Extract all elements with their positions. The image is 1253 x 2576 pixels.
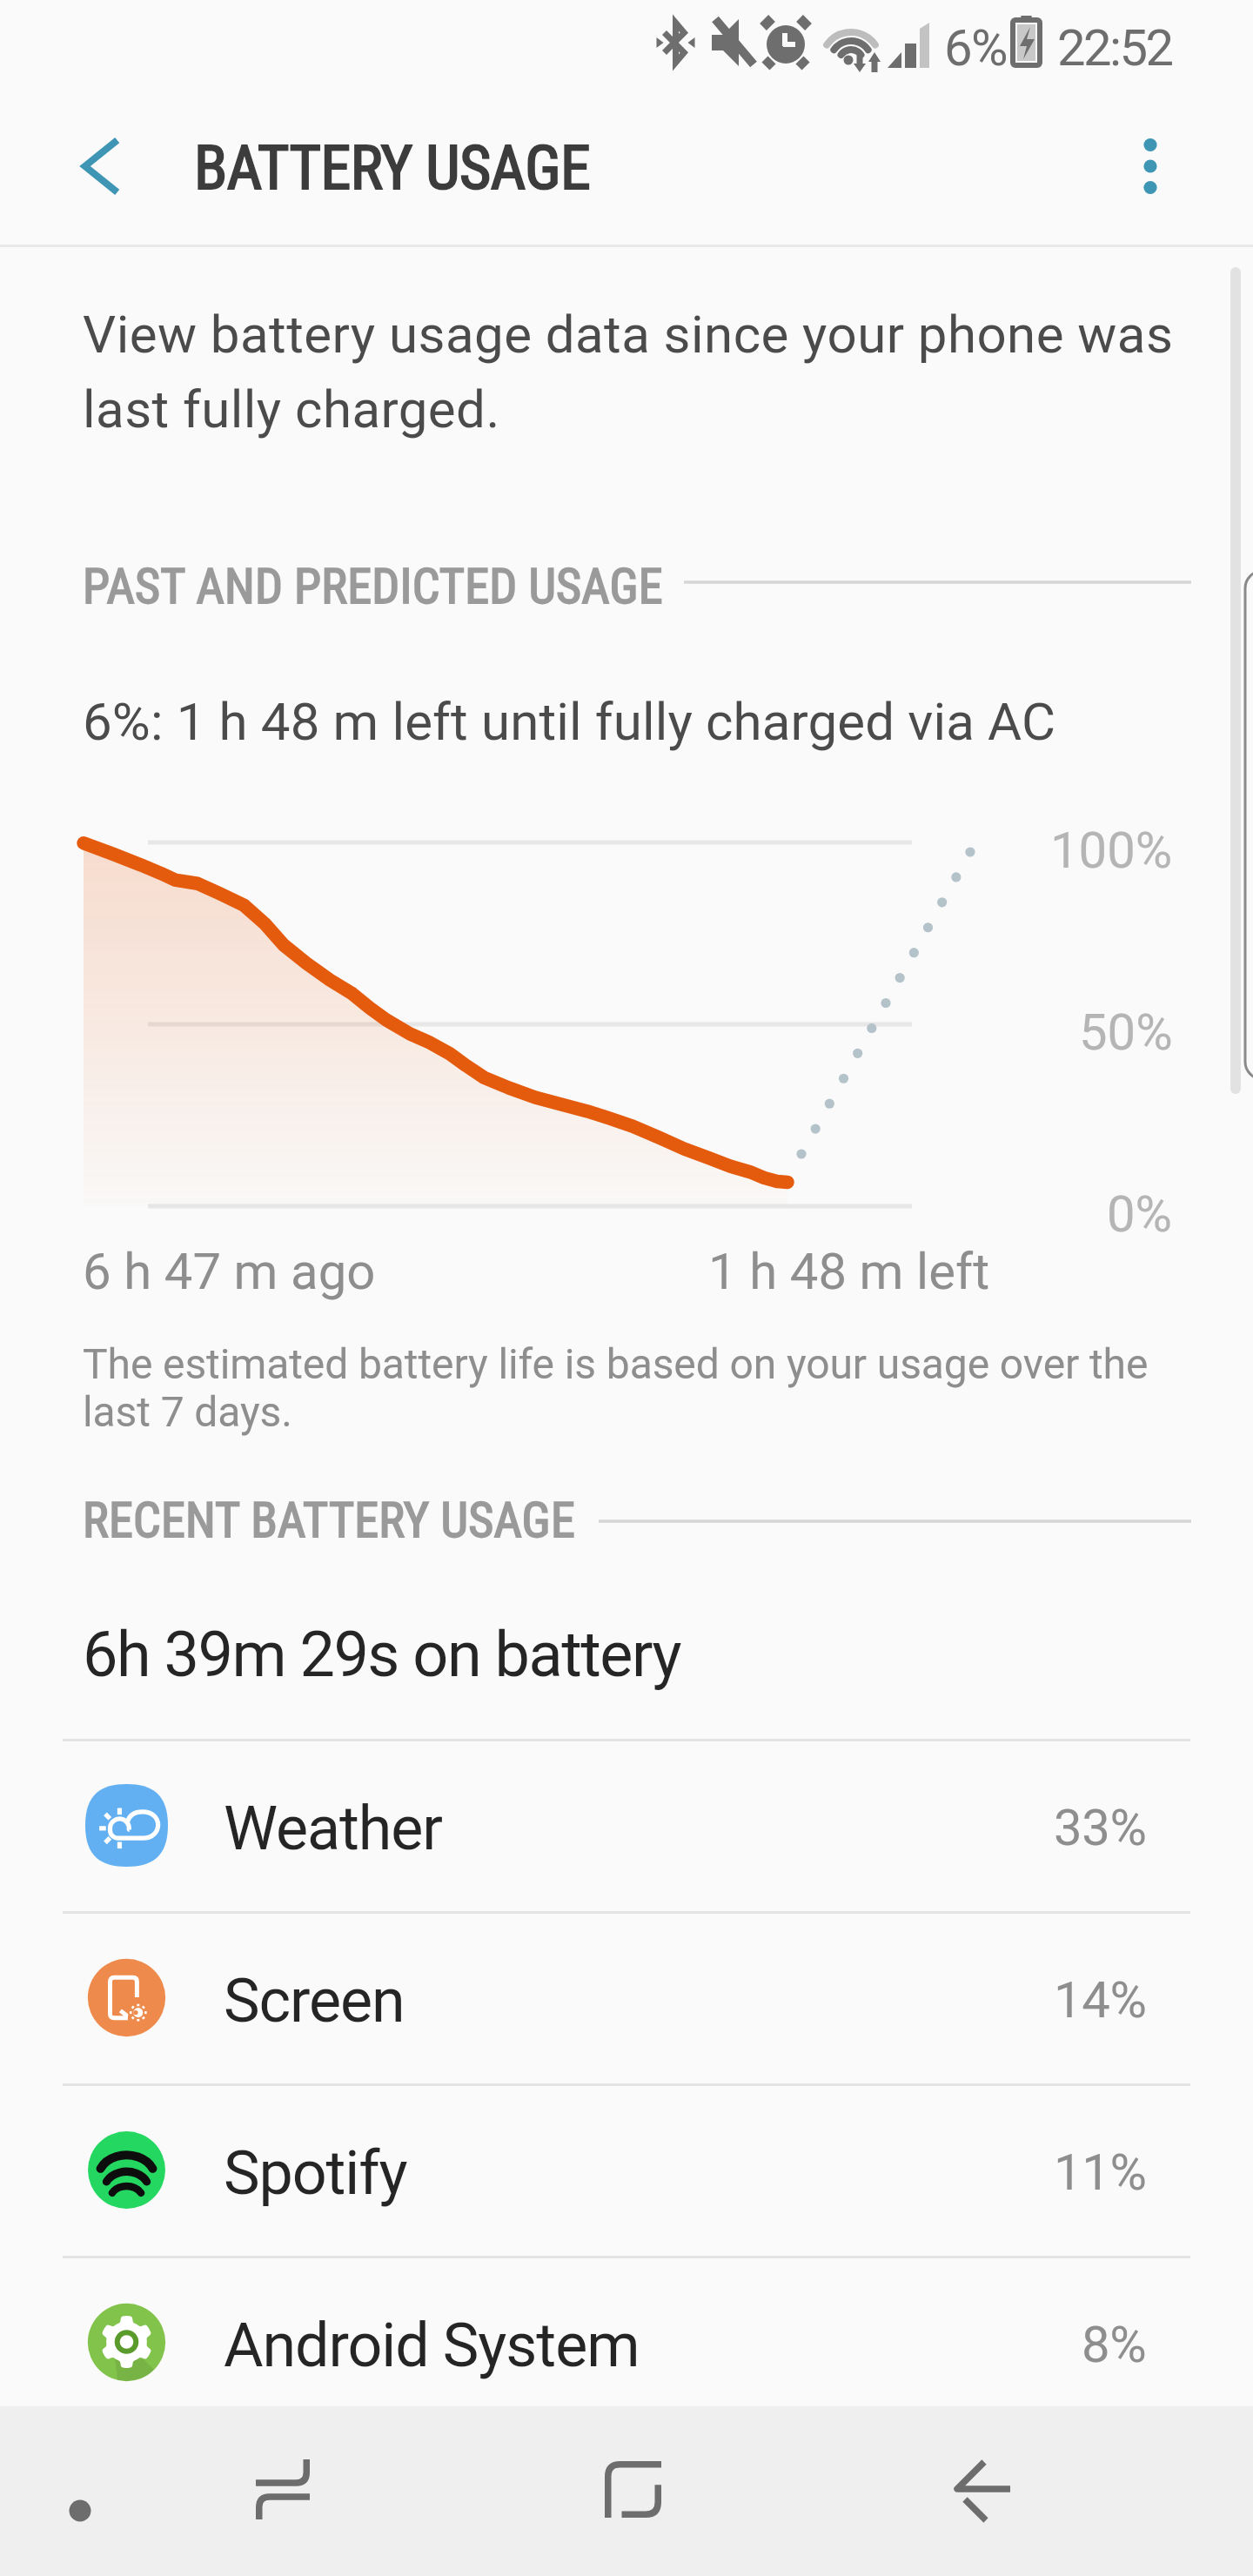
staticText: 33% [1054,1798,1147,1857]
staticText: Spotify [224,2137,407,2209]
staticText: 6 h 47 m ago [83,1242,376,1301]
staticText: 100% [1050,821,1173,880]
button[interactable]: Recent apps [191,2406,374,2576]
staticText: 6h 39m 29s on battery [83,1618,681,1691]
staticText: 6%: 1 h 48 m left until fully charged vi… [83,691,1056,752]
button[interactable]: Back [888,2406,1070,2576]
staticText: Screen [224,1965,405,2036]
staticText: 1 h 48 m left [708,1242,990,1301]
button[interactable]: Screen [0,1911,1253,2083]
button[interactable]: More options [1098,114,1203,218]
staticText: View battery usage data since your phone… [83,304,1196,440]
staticText: RECENT BATTERY USAGE [83,1492,575,1549]
staticText: 0% [1107,1184,1173,1244]
staticText: Android System [224,2310,640,2381]
button[interactable]: Android System [0,2256,1253,2428]
button[interactable]: Home [539,2406,722,2576]
staticText: 22:52 [1057,18,1172,77]
staticText: BATTERY USAGE [194,132,591,204]
staticText: 8% [1082,2315,1147,2374]
button[interactable]: Weather [0,1739,1253,1911]
staticText: 11% [1054,2143,1147,2202]
staticText: The estimated battery life is based on y… [83,1339,1196,1436]
button[interactable]: Bixby [17,2406,148,2576]
staticText: PAST AND PREDICTED USAGE [83,558,663,615]
staticText: 6% [944,18,1008,77]
button[interactable]: Navigate up [52,117,150,215]
staticText: Weather [224,1793,442,1864]
button[interactable]: Spotify [0,2083,1253,2256]
staticText: 14% [1054,1970,1147,2029]
staticText: 50% [1079,1003,1173,1062]
